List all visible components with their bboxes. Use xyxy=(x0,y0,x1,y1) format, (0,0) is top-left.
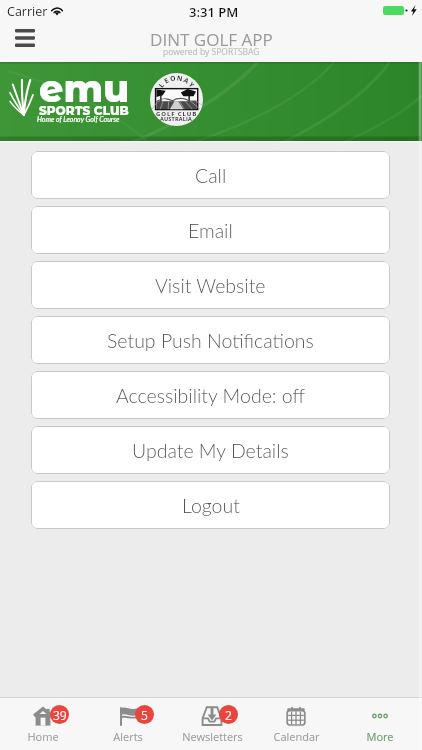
button[interactable]: Logout xyxy=(31,481,390,529)
staticText: 5 xyxy=(141,707,148,723)
staticText: Home of Leonay Golf Course xyxy=(37,115,120,123)
staticText: 39 xyxy=(53,707,67,723)
staticText: powered by SPORTSBAG xyxy=(163,46,260,58)
button[interactable]: Update My Details xyxy=(31,426,390,474)
staticText: SPORTS CLUB xyxy=(39,103,129,118)
button[interactable]: Call xyxy=(31,151,390,199)
staticText: Logout xyxy=(182,494,240,517)
button[interactable]: 39 xyxy=(0,698,85,750)
button[interactable]: Calendar xyxy=(254,698,338,750)
staticText: Setup Push Notifications xyxy=(107,329,314,352)
button[interactable]: Open navigation menu xyxy=(6,19,44,57)
staticText: emu xyxy=(39,65,130,111)
button[interactable]: 5 xyxy=(85,698,170,750)
staticText: 2 xyxy=(225,707,232,723)
staticText: Call xyxy=(195,164,227,187)
staticText: Alerts xyxy=(113,729,143,744)
button[interactable]: More xyxy=(338,698,422,750)
button[interactable]: Visit Website xyxy=(31,261,390,309)
button[interactable]: 2 xyxy=(170,698,254,750)
staticText: AUSTRALIA xyxy=(160,115,193,122)
staticText: Accessibility Mode: off xyxy=(116,384,306,407)
button[interactable]: Email xyxy=(31,206,390,254)
staticText: DINT GOLF APP xyxy=(150,28,273,51)
staticText: GOLF CLUB xyxy=(156,110,198,118)
staticText: Update My Details xyxy=(132,439,289,462)
staticText: Carrier xyxy=(7,3,48,20)
staticText: More xyxy=(366,729,394,744)
button[interactable]: Setup Push Notifications xyxy=(31,316,390,364)
staticText: Visit Website xyxy=(155,274,266,297)
staticText: Calendar xyxy=(273,729,320,744)
button[interactable]: Accessibility Mode: off xyxy=(31,371,390,419)
staticText: 3:31 PM xyxy=(189,3,239,21)
staticText: Email xyxy=(188,219,233,242)
staticText: Home xyxy=(27,729,59,744)
staticText: Newsletters xyxy=(182,729,243,744)
